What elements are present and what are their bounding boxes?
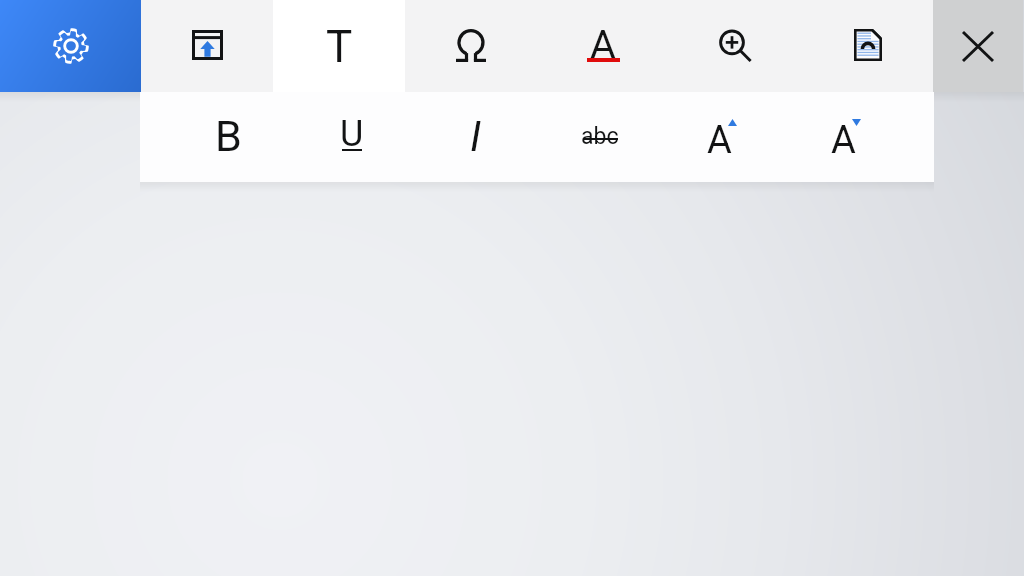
button[interactable]: Increase font size xyxy=(662,92,786,182)
button[interactable]: Insert header xyxy=(141,0,273,92)
button[interactable]: Italic xyxy=(414,92,538,182)
button[interactable]: Zoom in xyxy=(669,0,801,92)
button[interactable]: Insert symbol xyxy=(405,0,537,92)
staticText: A xyxy=(590,21,616,67)
staticText: B xyxy=(215,111,242,161)
button[interactable]: Font colour xyxy=(537,0,669,92)
button[interactable]: Bold xyxy=(166,92,290,182)
button[interactable]: Decrease font size xyxy=(786,92,910,182)
button[interactable]: Strikethrough xyxy=(538,92,662,182)
staticText: A xyxy=(831,118,856,163)
staticText: abc xyxy=(581,123,619,150)
staticText: T xyxy=(326,21,353,73)
staticText: I xyxy=(470,112,482,161)
staticText: A xyxy=(707,118,732,163)
button[interactable]: Page setup xyxy=(801,0,933,92)
button[interactable]: Text style xyxy=(273,0,405,92)
button[interactable]: Underline xyxy=(290,92,414,182)
staticText: U xyxy=(340,113,364,155)
button[interactable]: Close toolbar xyxy=(933,0,1023,92)
button[interactable]: Settings xyxy=(0,0,141,92)
